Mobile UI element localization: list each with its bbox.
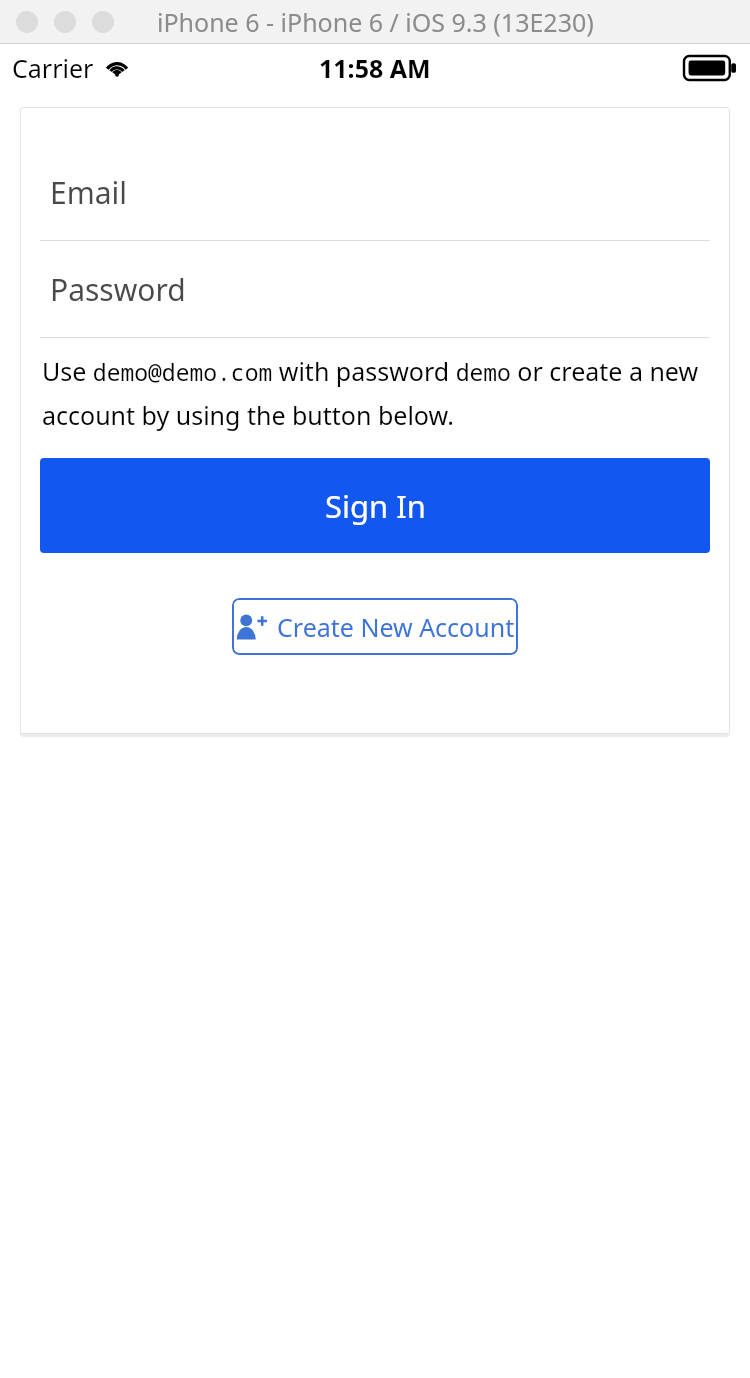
staticText: Sign In	[325, 485, 426, 527]
button[interactable]: Create new account	[232, 598, 518, 655]
button[interactable]: Email	[20, 145, 730, 240]
staticText: Use demo@demo.com with password demo or …	[42, 354, 708, 432]
button[interactable]	[92, 11, 114, 33]
staticText: Carrier	[12, 51, 94, 85]
staticText: iPhone 6 - iPhone 6 / iOS 9.3 (13E230)	[157, 5, 594, 39]
staticText: Create New Account	[277, 610, 515, 644]
other: Create new account	[235, 612, 269, 642]
staticText: 11:58 AM	[319, 51, 431, 85]
staticText: Password	[50, 269, 186, 310]
button[interactable]	[54, 11, 76, 33]
button[interactable]: Password	[20, 242, 730, 337]
button[interactable]	[16, 11, 38, 33]
button[interactable]: Sign In	[40, 458, 710, 553]
staticText: Email	[50, 172, 128, 213]
